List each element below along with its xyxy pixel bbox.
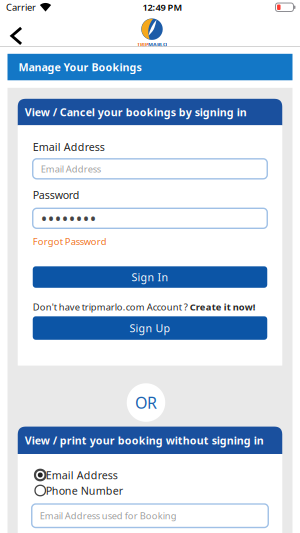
staticText: •••••••• (41, 207, 97, 230)
staticText: Email Address (41, 163, 101, 175)
button[interactable]: Phone Number (32, 485, 123, 496)
staticText: OR (135, 392, 157, 413)
staticText: Phone Number (46, 483, 123, 498)
staticText: Password (33, 188, 80, 202)
staticText: Sign In (131, 270, 168, 284)
staticText: Don't have tripmarlo.com Account ? (33, 301, 190, 313)
button[interactable]: Sign In (33, 266, 267, 288)
button[interactable]: Forgot Password (33, 236, 107, 246)
button[interactable]: Email Address used for Booking (32, 504, 268, 527)
button[interactable]: Email Address (33, 159, 267, 179)
button[interactable]: Password (33, 208, 267, 228)
button[interactable]: Back (0, 16, 23, 46)
staticText: 12:49 PM (142, 1, 182, 13)
staticText: MARLO (148, 41, 167, 48)
staticText: View / print your booking without signin… (25, 433, 264, 447)
staticText: Create it now! (190, 301, 256, 313)
staticText: Sign Up (129, 321, 170, 335)
staticText: Forgot Password (33, 235, 107, 247)
button[interactable]: Email Address (32, 469, 118, 480)
staticText: Manage Your Bookings (18, 60, 141, 74)
staticText: View / Cancel your bookings by signing i… (25, 105, 247, 119)
staticText: Carrier (6, 1, 36, 13)
staticText: Email Address (46, 468, 118, 482)
staticText: Email Address (33, 140, 105, 154)
button[interactable]: Sign Up (33, 316, 267, 340)
button[interactable]: Create it now! (190, 301, 256, 313)
staticText: Email Address used for Booking (40, 510, 177, 522)
staticText: TRIP (137, 41, 148, 48)
